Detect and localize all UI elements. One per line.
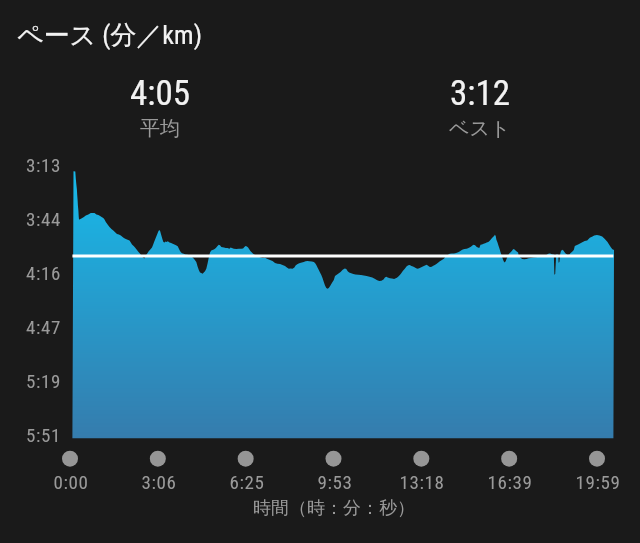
staticText: ペース (分／km) bbox=[17, 19, 202, 52]
staticText: 3:06 bbox=[119, 471, 199, 493]
staticText: 平均 bbox=[140, 116, 180, 141]
button[interactable]: ペースのグラフ bbox=[14, 152, 626, 452]
staticText: 19:59 bbox=[558, 471, 638, 493]
staticText: ベスト bbox=[449, 116, 511, 141]
staticText: 3:44 bbox=[1, 208, 61, 230]
staticText: 5:19 bbox=[1, 370, 61, 392]
staticText: 3:12 bbox=[450, 73, 511, 114]
staticText: 13:18 bbox=[382, 471, 462, 493]
staticText: 4:47 bbox=[1, 316, 61, 338]
staticText: 6:25 bbox=[207, 471, 287, 493]
staticText: 4:05 bbox=[130, 73, 191, 114]
button[interactable]: 3:12 bbox=[380, 73, 580, 139]
staticText: 時間（時：分：秒） bbox=[234, 497, 434, 520]
button[interactable]: 4:05 bbox=[60, 73, 260, 139]
staticText: 0:00 bbox=[31, 471, 111, 493]
staticText: 5:51 bbox=[1, 424, 61, 446]
staticText: 9:53 bbox=[295, 471, 375, 493]
staticText: 16:39 bbox=[470, 471, 550, 493]
staticText: 3:13 bbox=[1, 154, 61, 176]
staticText: 4:16 bbox=[1, 262, 61, 284]
